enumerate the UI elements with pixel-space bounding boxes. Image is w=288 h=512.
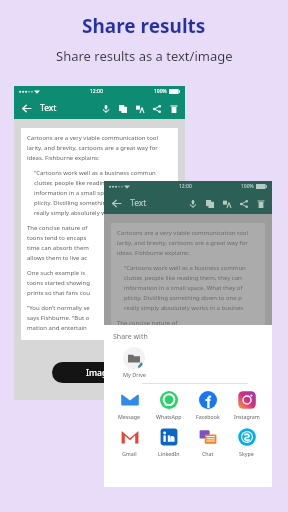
staticText: Text <box>40 102 57 114</box>
staticText: ideas. Fishburne explains: <box>117 249 190 257</box>
button[interactable]: LinkedIn <box>149 427 188 457</box>
staticText: larity, and brevity, cartoons are a grea… <box>117 239 248 247</box>
button[interactable]: Back <box>19 101 33 115</box>
button[interactable]: Facebook <box>188 390 227 420</box>
staticText: Image <box>86 367 113 379</box>
staticText: Cartoons are a very viable communication… <box>117 229 248 237</box>
staticText: Skype <box>239 450 254 457</box>
staticText: Chat <box>202 450 214 457</box>
staticText: Share with <box>113 332 148 342</box>
staticText: Gmail <box>122 450 137 457</box>
button[interactable]: Share <box>150 102 163 115</box>
staticText: plicity. Distilling something down to on… <box>34 199 152 207</box>
button[interactable]: Back <box>109 196 123 210</box>
staticText: 12:00 <box>90 88 103 95</box>
button[interactable]: Message <box>110 390 149 420</box>
staticText: clutter, people like reading them, they … <box>124 274 242 282</box>
button[interactable]: Skype <box>227 427 266 457</box>
button[interactable]: Translate <box>133 102 146 115</box>
button[interactable]: Image <box>52 362 147 383</box>
staticText: plicity. Distilling something down to on… <box>124 294 242 302</box>
staticText: really simply absolutely works in a busi… <box>124 304 244 312</box>
staticText: Instagram <box>234 413 260 420</box>
staticText: WhatsApp <box>156 413 182 420</box>
staticText: information in a small space. What they … <box>124 284 243 292</box>
button[interactable]: WhatsApp <box>149 390 188 420</box>
button[interactable]: Instagram <box>227 390 266 420</box>
button[interactable]: Microphone <box>99 102 112 115</box>
button[interactable]: Translate <box>220 197 233 210</box>
button[interactable]: My Drive <box>114 347 154 378</box>
staticText: information in a small space. What they … <box>34 189 153 197</box>
button[interactable]: Chat <box>188 427 227 457</box>
staticText: toons tend to encaps <box>27 234 87 242</box>
button[interactable]: Gmail <box>110 427 149 457</box>
staticText: toons tend to encaps <box>117 329 177 337</box>
staticText: allows them to live ac <box>27 254 88 262</box>
staticText: prints so that fans cou <box>117 384 180 392</box>
staticText: “Cartoons work well as a business commun <box>34 169 156 177</box>
staticText: Facebook <box>196 413 220 420</box>
staticText: larity, and brevity, cartoons are a grea… <box>27 144 158 152</box>
staticText: Share results <box>82 13 206 39</box>
staticText: time can absorb them <box>27 244 89 252</box>
staticText: says Fishburne. “But o <box>27 314 90 322</box>
staticText: 100% <box>154 88 167 95</box>
staticText: allows them to live ac <box>117 349 178 357</box>
staticText: The concise nature of <box>27 224 88 232</box>
staticText: Cartoons are a very viable communication… <box>27 134 158 142</box>
staticText: The concise nature of <box>117 319 178 327</box>
staticText: ideas. Fishburne explains: <box>27 154 100 162</box>
staticText: 100% <box>241 183 254 190</box>
staticText: “You don’t normally se <box>117 399 180 407</box>
staticText: toons started showing <box>27 279 91 287</box>
staticText: One such example is <box>117 364 176 372</box>
staticText: My Drive <box>123 371 146 378</box>
staticText: “Cartoons work well as a business commun <box>124 264 246 272</box>
staticText: clutter, people like reading them, they … <box>34 179 152 187</box>
staticText: says Fishburne. “But o <box>117 409 180 417</box>
staticText: mation and entertain <box>117 419 177 427</box>
staticText: Message <box>118 413 141 420</box>
button[interactable]: Microphone <box>186 197 199 210</box>
button[interactable]: Share <box>237 197 250 210</box>
staticText: really simply absolutely works in a busi… <box>34 209 154 217</box>
staticText: 12:00 <box>179 183 192 190</box>
button[interactable]: Delete <box>254 197 267 210</box>
button[interactable]: Delete <box>167 102 180 115</box>
staticText: prints so that fans cou <box>27 289 90 297</box>
staticText: toons started showing <box>117 374 181 382</box>
staticText: Share results as a text/image <box>56 47 233 65</box>
staticText: mation and entertain <box>27 324 87 332</box>
staticText: One such example is <box>27 269 86 277</box>
button[interactable]: Copy <box>116 102 129 115</box>
staticText: Text <box>130 197 147 209</box>
staticText: “You don’t normally se <box>27 304 90 312</box>
button[interactable]: Copy <box>203 197 216 210</box>
staticText: LinkedIn <box>158 450 180 457</box>
